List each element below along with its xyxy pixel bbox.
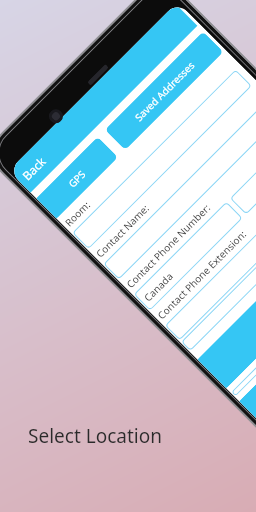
button[interactable]: Saved Addresses — [105, 31, 223, 150]
button[interactable]: GPS — [36, 137, 118, 219]
staticText: Saved Addresses — [132, 58, 197, 124]
button[interactable] — [181, 178, 256, 351]
button[interactable] — [103, 101, 256, 280]
staticText: Back — [18, 153, 49, 183]
button[interactable] — [165, 162, 256, 340]
button[interactable]: Canada — [134, 202, 243, 311]
staticText: Contact Name: — [93, 201, 152, 260]
staticText: Contact Phone Number: — [123, 200, 214, 291]
button[interactable]: Back — [9, 4, 197, 193]
staticText: Canada — [141, 269, 176, 304]
button[interactable]: SAVE — [197, 193, 256, 388]
staticText: GPS — [65, 167, 88, 190]
button[interactable] — [231, 229, 256, 396]
button[interactable]: +1 — [230, 131, 256, 214]
staticText: Room: — [62, 197, 93, 229]
button[interactable] — [72, 70, 252, 249]
button[interactable]: CONTINUE — [239, 234, 256, 429]
staticText: Contact Phone Extension: — [154, 226, 250, 322]
staticText: Select Location — [28, 423, 162, 449]
